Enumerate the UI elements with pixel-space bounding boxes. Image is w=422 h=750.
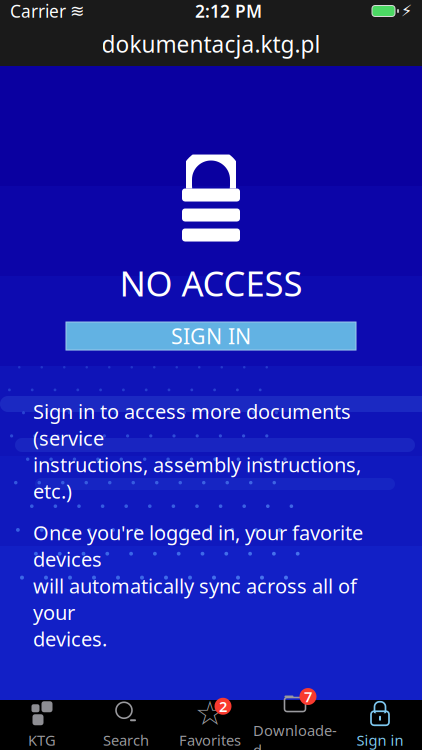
button[interactable]: 7 <box>252 700 338 750</box>
staticText: Sign in to access more documents (servic… <box>33 398 361 504</box>
staticText: SIGN IN <box>171 322 251 350</box>
staticText: Sign in <box>356 730 403 750</box>
staticText: ☆ <box>195 694 225 732</box>
staticText: 7 <box>304 687 312 706</box>
staticText: Favorites <box>179 730 241 750</box>
button[interactable]: Sign in <box>338 700 422 750</box>
staticText: NO ACCESS <box>119 260 302 306</box>
button[interactable]: ☆ <box>168 700 252 750</box>
staticText: dokumentacja.ktg.pl <box>101 29 320 59</box>
staticText: Once you're logged in, your favorite dev… <box>33 519 363 652</box>
staticText: Search <box>103 730 149 750</box>
staticText: Downloaded <box>253 720 337 750</box>
staticText: ≋ <box>70 1 85 21</box>
button[interactable]: SIGN IN <box>66 322 356 350</box>
staticText: Carrier <box>10 0 66 22</box>
staticText: 2 <box>219 696 227 716</box>
staticText: ⚡︎ <box>401 2 412 20</box>
button[interactable]: KTG <box>0 700 84 750</box>
button[interactable]: Search <box>84 700 168 750</box>
staticText: 2:12 PM <box>195 0 262 22</box>
staticText: KTG <box>28 730 56 750</box>
